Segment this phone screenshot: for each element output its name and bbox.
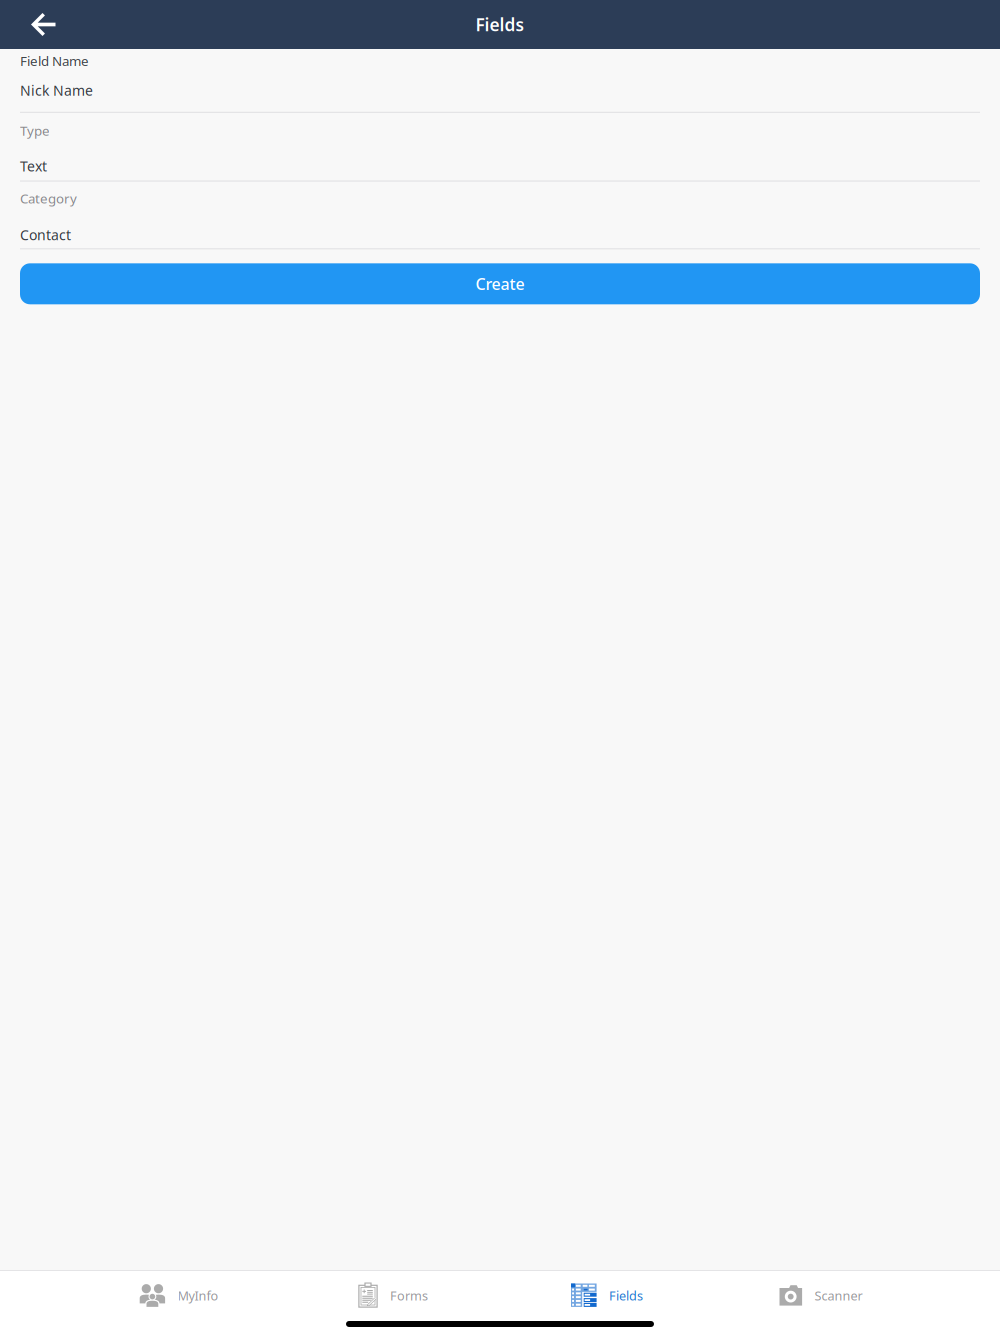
staticText: Field Name — [20, 52, 89, 70]
button[interactable]: Create — [20, 263, 980, 304]
staticText: Fields — [475, 13, 524, 36]
staticText: Type — [20, 122, 50, 139]
staticText: Scanner — [814, 1287, 862, 1304]
staticText: Contact — [20, 225, 71, 244]
button[interactable]: Forms — [286, 1277, 500, 1314]
staticText: Create — [475, 273, 524, 294]
button[interactable]: MyInfo — [72, 1277, 286, 1314]
button[interactable]: Scanner — [714, 1277, 928, 1314]
button[interactable]: Fields — [500, 1277, 714, 1314]
staticText: Forms — [390, 1287, 428, 1304]
staticText: MyInfo — [177, 1287, 218, 1304]
button[interactable]: Back — [19, 0, 68, 49]
staticText: Nick Name — [20, 81, 93, 100]
staticText: Text — [20, 156, 47, 176]
staticText: Category — [20, 189, 77, 207]
staticText: Fields — [609, 1287, 643, 1304]
